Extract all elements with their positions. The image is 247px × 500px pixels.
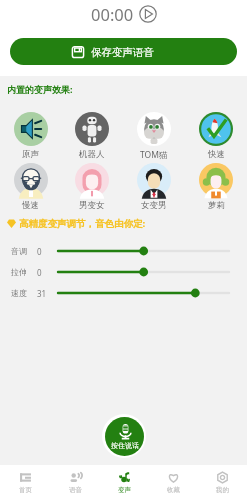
button[interactable]: 男变女 (61, 163, 123, 211)
staticText: 我的 (216, 486, 229, 494)
button[interactable]: 原声 (0, 112, 61, 160)
staticText: 0 (37, 246, 42, 257)
button[interactable]: 萝莉 (185, 163, 247, 211)
button[interactable]: TOM猫 (123, 112, 185, 161)
staticText: 男变女 (79, 200, 105, 211)
staticText: 收藏 (167, 486, 180, 494)
staticText: 原声 (22, 149, 39, 160)
button[interactable]: 变声 (100, 465, 149, 500)
button[interactable]: 语音 (50, 465, 100, 500)
staticText: 女变男 (141, 200, 167, 211)
staticText: 机器人 (79, 149, 105, 160)
staticText: 00:00 (91, 3, 134, 25)
button[interactable]: 收藏 (149, 465, 198, 500)
button[interactable]: 机器人 (61, 112, 123, 160)
staticText: 语音 (69, 486, 82, 494)
staticText: 拉伸 (11, 267, 27, 277)
staticText: 高精度变声调节，音色由你定: (19, 217, 146, 230)
staticText: 萝莉 (208, 200, 225, 211)
button[interactable]: 速度 (58, 286, 229, 300)
button[interactable]: 首页 (0, 465, 50, 500)
staticText: 音调 (11, 246, 27, 256)
button[interactable]: 按住说话 (105, 417, 144, 456)
button[interactable]: 音调 (58, 244, 229, 258)
staticText: 速度 (11, 288, 27, 298)
staticText: 变声 (118, 486, 131, 494)
staticText: 首页 (19, 486, 32, 494)
staticText: 内置的变声效果: (7, 83, 73, 95)
button[interactable]: 快速 (185, 112, 247, 160)
button[interactable]: 拉伸 (58, 265, 229, 279)
staticText: 31 (37, 288, 47, 299)
button[interactable]: 慢速 (0, 163, 61, 211)
staticText: TOM猫 (140, 149, 168, 161)
staticText: 保存变声语音 (91, 46, 154, 59)
staticText: 按住说话 (111, 441, 139, 450)
button[interactable]: 女变男 (123, 163, 185, 211)
staticText: 慢速 (22, 200, 39, 211)
button[interactable]: 保存变声语音 (10, 38, 237, 65)
staticText: 0 (37, 267, 42, 278)
button[interactable]: 我的 (198, 465, 247, 500)
button[interactable]: Play (139, 5, 157, 23)
staticText: 快速 (208, 149, 225, 160)
